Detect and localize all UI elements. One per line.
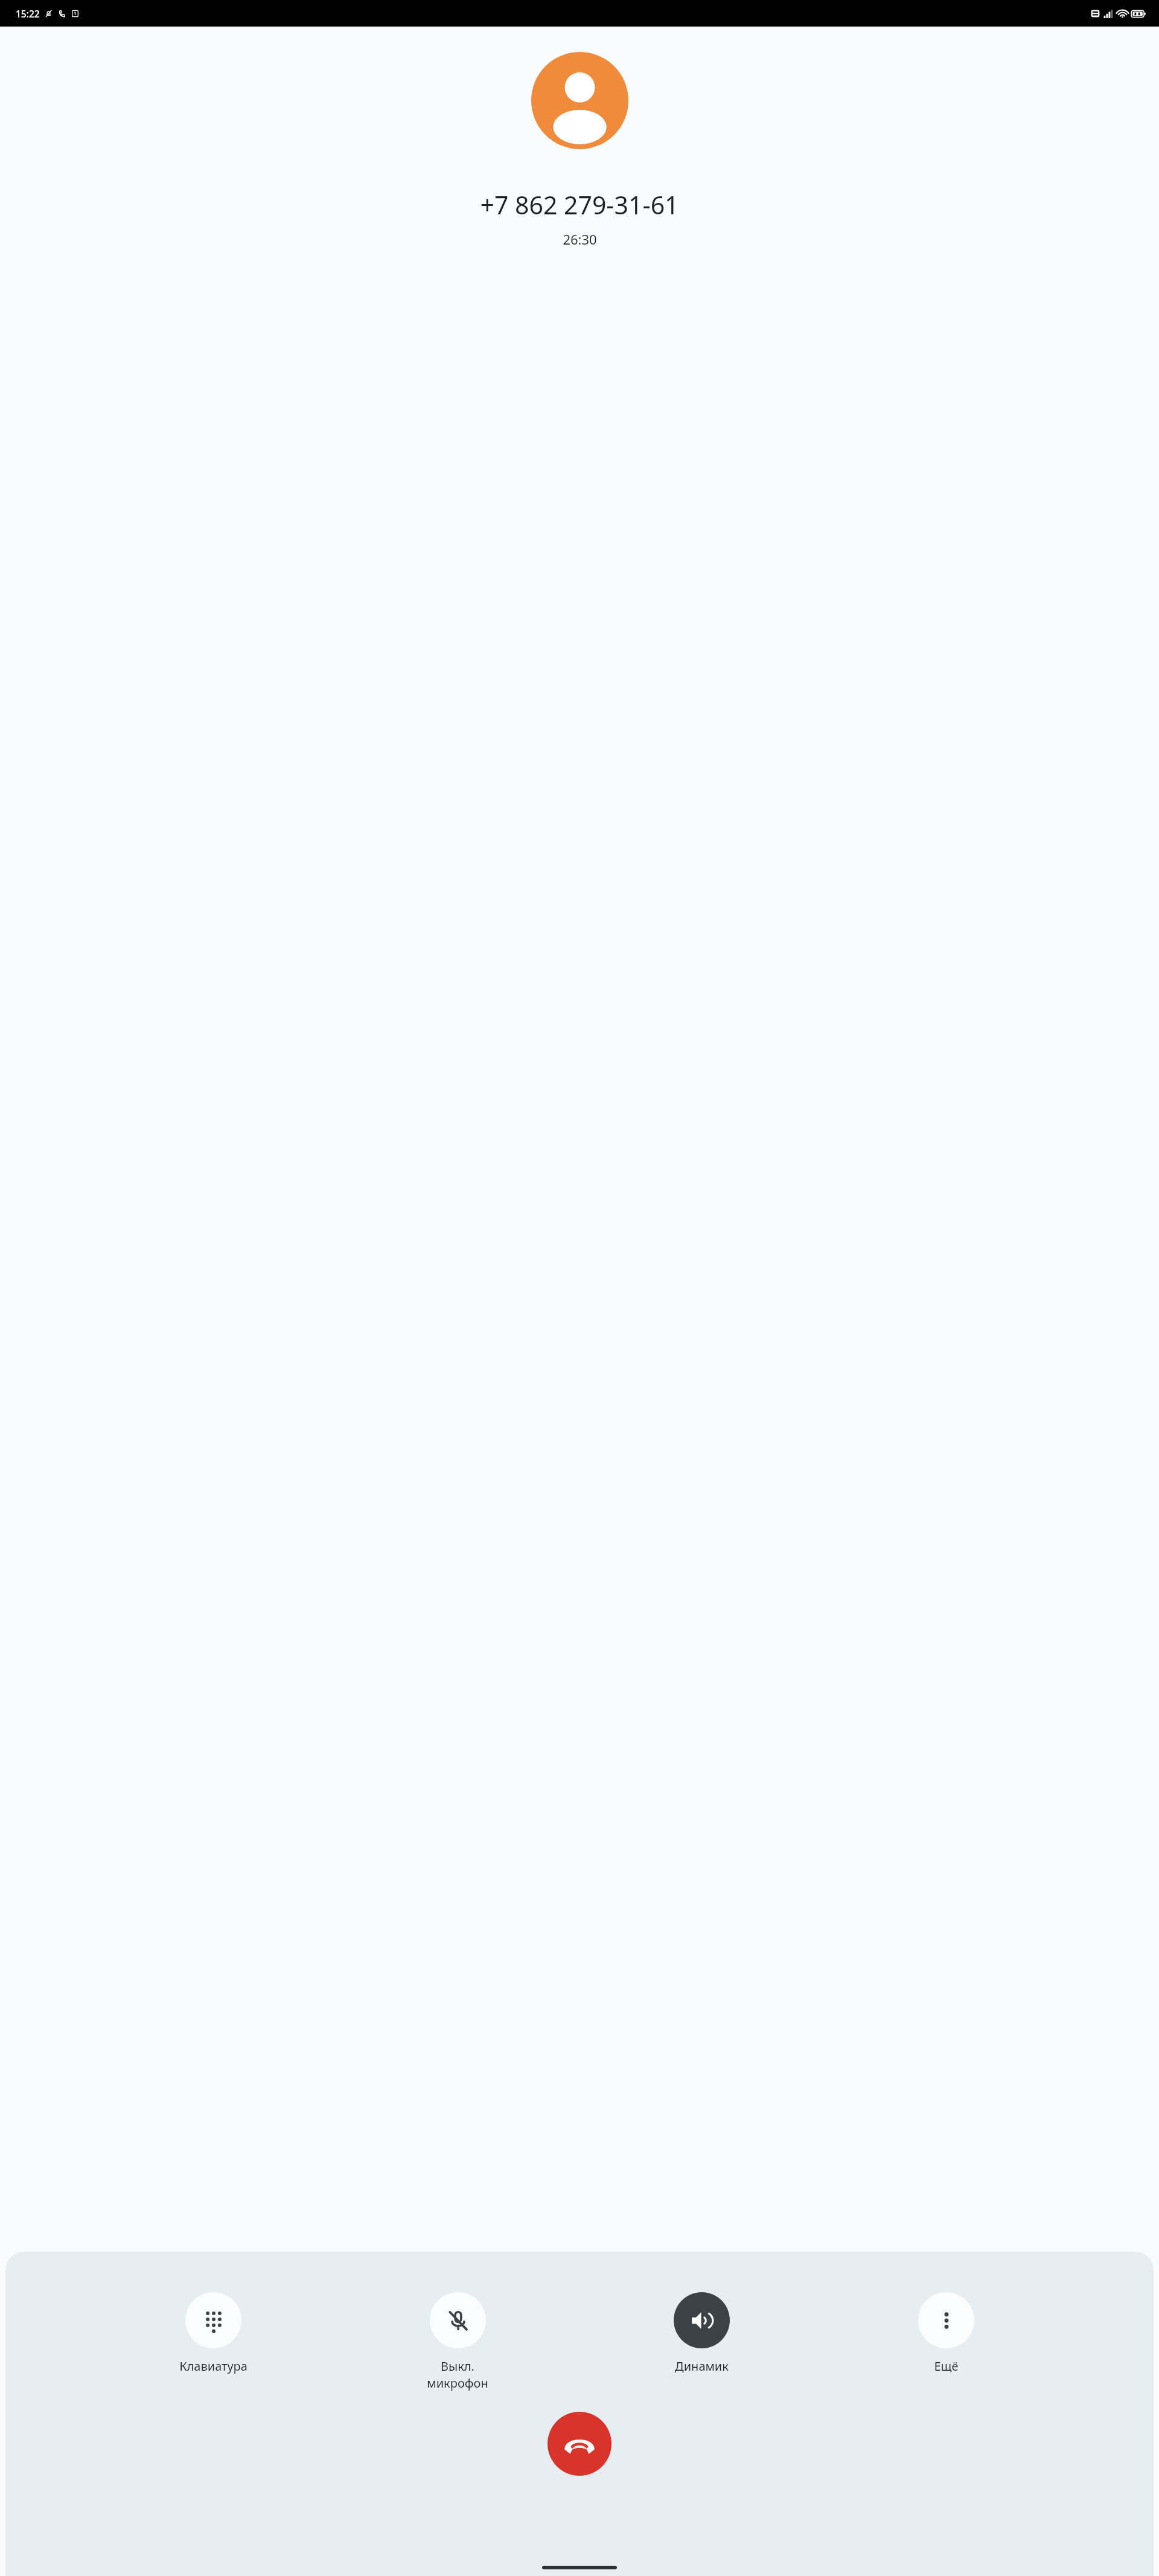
button[interactable]: Выкл. микрофон xyxy=(421,2292,494,2391)
staticText: 15:22 xyxy=(16,7,40,20)
staticText: 26:30 xyxy=(563,230,597,248)
staticText: Выкл. микрофон xyxy=(427,2358,488,2391)
button[interactable]: Ещё xyxy=(910,2292,982,2374)
staticText: Клавиатура xyxy=(179,2358,247,2374)
other: Contact photo xyxy=(531,52,628,149)
button[interactable]: End call xyxy=(548,2412,611,2476)
staticText: +7 862 279-31-61 xyxy=(480,188,679,222)
button[interactable]: Динамик xyxy=(665,2292,738,2374)
staticText: Ещё xyxy=(934,2358,959,2374)
staticText: Динамик xyxy=(675,2358,729,2374)
button[interactable]: Клавиатура xyxy=(177,2292,249,2374)
